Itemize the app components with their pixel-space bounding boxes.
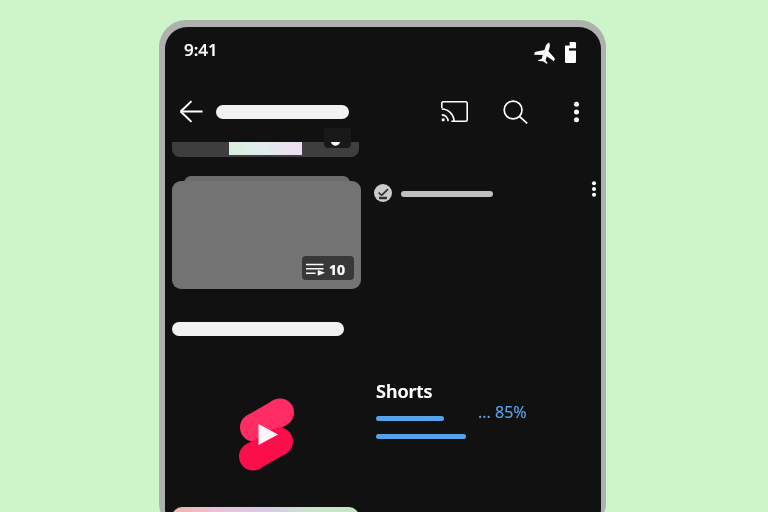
staticText: Shorts <box>376 379 433 404</box>
button[interactable]: 10 <box>172 181 361 289</box>
button[interactable]: Back <box>180 100 203 123</box>
button[interactable] <box>172 142 359 157</box>
staticText: 10 <box>329 260 346 279</box>
button[interactable]: Search <box>501 98 529 126</box>
button[interactable]: Cast <box>441 101 468 122</box>
button[interactable] <box>172 322 344 336</box>
button[interactable] <box>216 105 349 119</box>
button[interactable]: More options for this video <box>588 178 600 200</box>
button[interactable]: More options <box>570 100 583 124</box>
staticText: ... 85% <box>478 401 527 423</box>
staticText: 9:41 <box>184 38 218 61</box>
